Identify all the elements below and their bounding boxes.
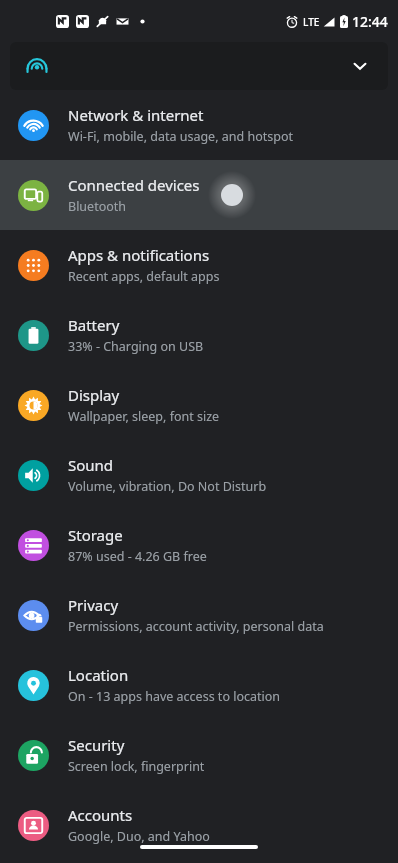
button[interactable]: Security (0, 720, 398, 790)
staticText: Volume, vibration, Do Not Disturb (68, 478, 267, 495)
staticText: Sound (68, 455, 114, 475)
button[interactable]: Privacy (0, 580, 398, 650)
staticText: Permissions, account activity, personal … (68, 618, 324, 635)
button[interactable]: Battery (0, 300, 398, 370)
staticText: Google, Duo, and Yahoo (68, 828, 210, 845)
staticText: Network & internet (68, 105, 204, 125)
staticText: On - 13 apps have access to location (68, 688, 281, 705)
staticText: Storage (68, 525, 123, 545)
button[interactable]: Apps & notifications (0, 230, 398, 300)
staticText: Accounts (68, 805, 133, 825)
button[interactable]: Sound (0, 440, 398, 510)
staticText: Security (68, 735, 125, 755)
staticText: 33% - Charging on USB (68, 338, 204, 355)
other: Search settings (26, 55, 48, 77)
staticText: Bluetooth (68, 198, 127, 215)
staticText: Location (68, 665, 129, 685)
button[interactable]: Location (0, 650, 398, 720)
staticText: Connected devices (68, 175, 200, 195)
staticText: Wallpaper, sleep, font size (68, 408, 220, 425)
button[interactable]: Network & internet (0, 90, 398, 160)
staticText: Display (68, 385, 120, 405)
staticText: Recent apps, default apps (68, 268, 220, 285)
staticText: LTE (303, 15, 320, 29)
button[interactable]: Display (0, 370, 398, 440)
staticText: 87% used - 4.26 GB free (68, 548, 207, 565)
staticText: Screen lock, fingerprint (68, 758, 205, 775)
button[interactable]: Accounts (0, 790, 398, 860)
button[interactable]: Search settings (10, 42, 388, 90)
other: Expand (352, 58, 368, 74)
staticText: Privacy (68, 595, 119, 615)
button[interactable]: Storage (0, 510, 398, 580)
staticText: Apps & notifications (68, 245, 210, 265)
staticText: 12:44 (352, 12, 388, 31)
staticText: Wi-Fi, mobile, data usage, and hotspot (68, 128, 293, 145)
staticText: Battery (68, 315, 120, 335)
button[interactable]: Connected devices (0, 160, 398, 230)
